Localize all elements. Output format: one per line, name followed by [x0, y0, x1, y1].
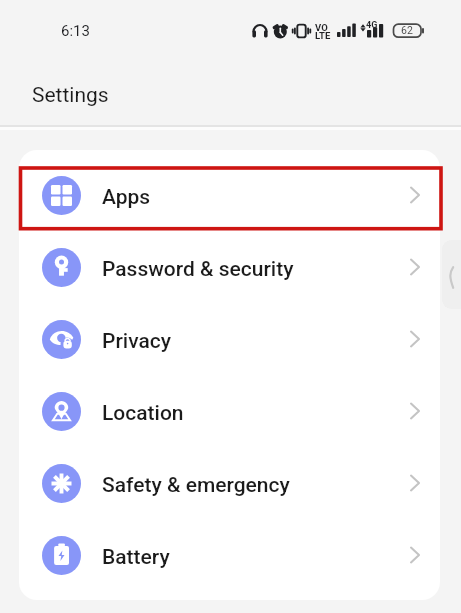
button[interactable]: Battery	[19, 519, 440, 591]
staticText: 6:13	[61, 22, 90, 40]
staticText: Settings	[32, 83, 109, 108]
staticText: 62	[401, 24, 413, 36]
staticText: Privacy	[102, 329, 172, 354]
staticText: Apps	[102, 185, 151, 210]
button[interactable]: Privacy	[19, 303, 440, 375]
staticText: 4G	[366, 20, 378, 31]
staticText: LTE	[315, 30, 331, 41]
button[interactable]: Safety & emergency	[19, 447, 440, 519]
button[interactable]: Password & security	[19, 231, 440, 303]
staticText: VO	[315, 22, 328, 33]
button[interactable]: Apps	[19, 159, 440, 231]
button[interactable]: Location	[19, 375, 440, 447]
staticText: Password & security	[102, 257, 294, 282]
staticText: Location	[102, 401, 184, 426]
staticText: Battery	[102, 545, 170, 570]
staticText: Safety & emergency	[102, 473, 290, 498]
button[interactable]: Open edge panel	[442, 240, 461, 309]
